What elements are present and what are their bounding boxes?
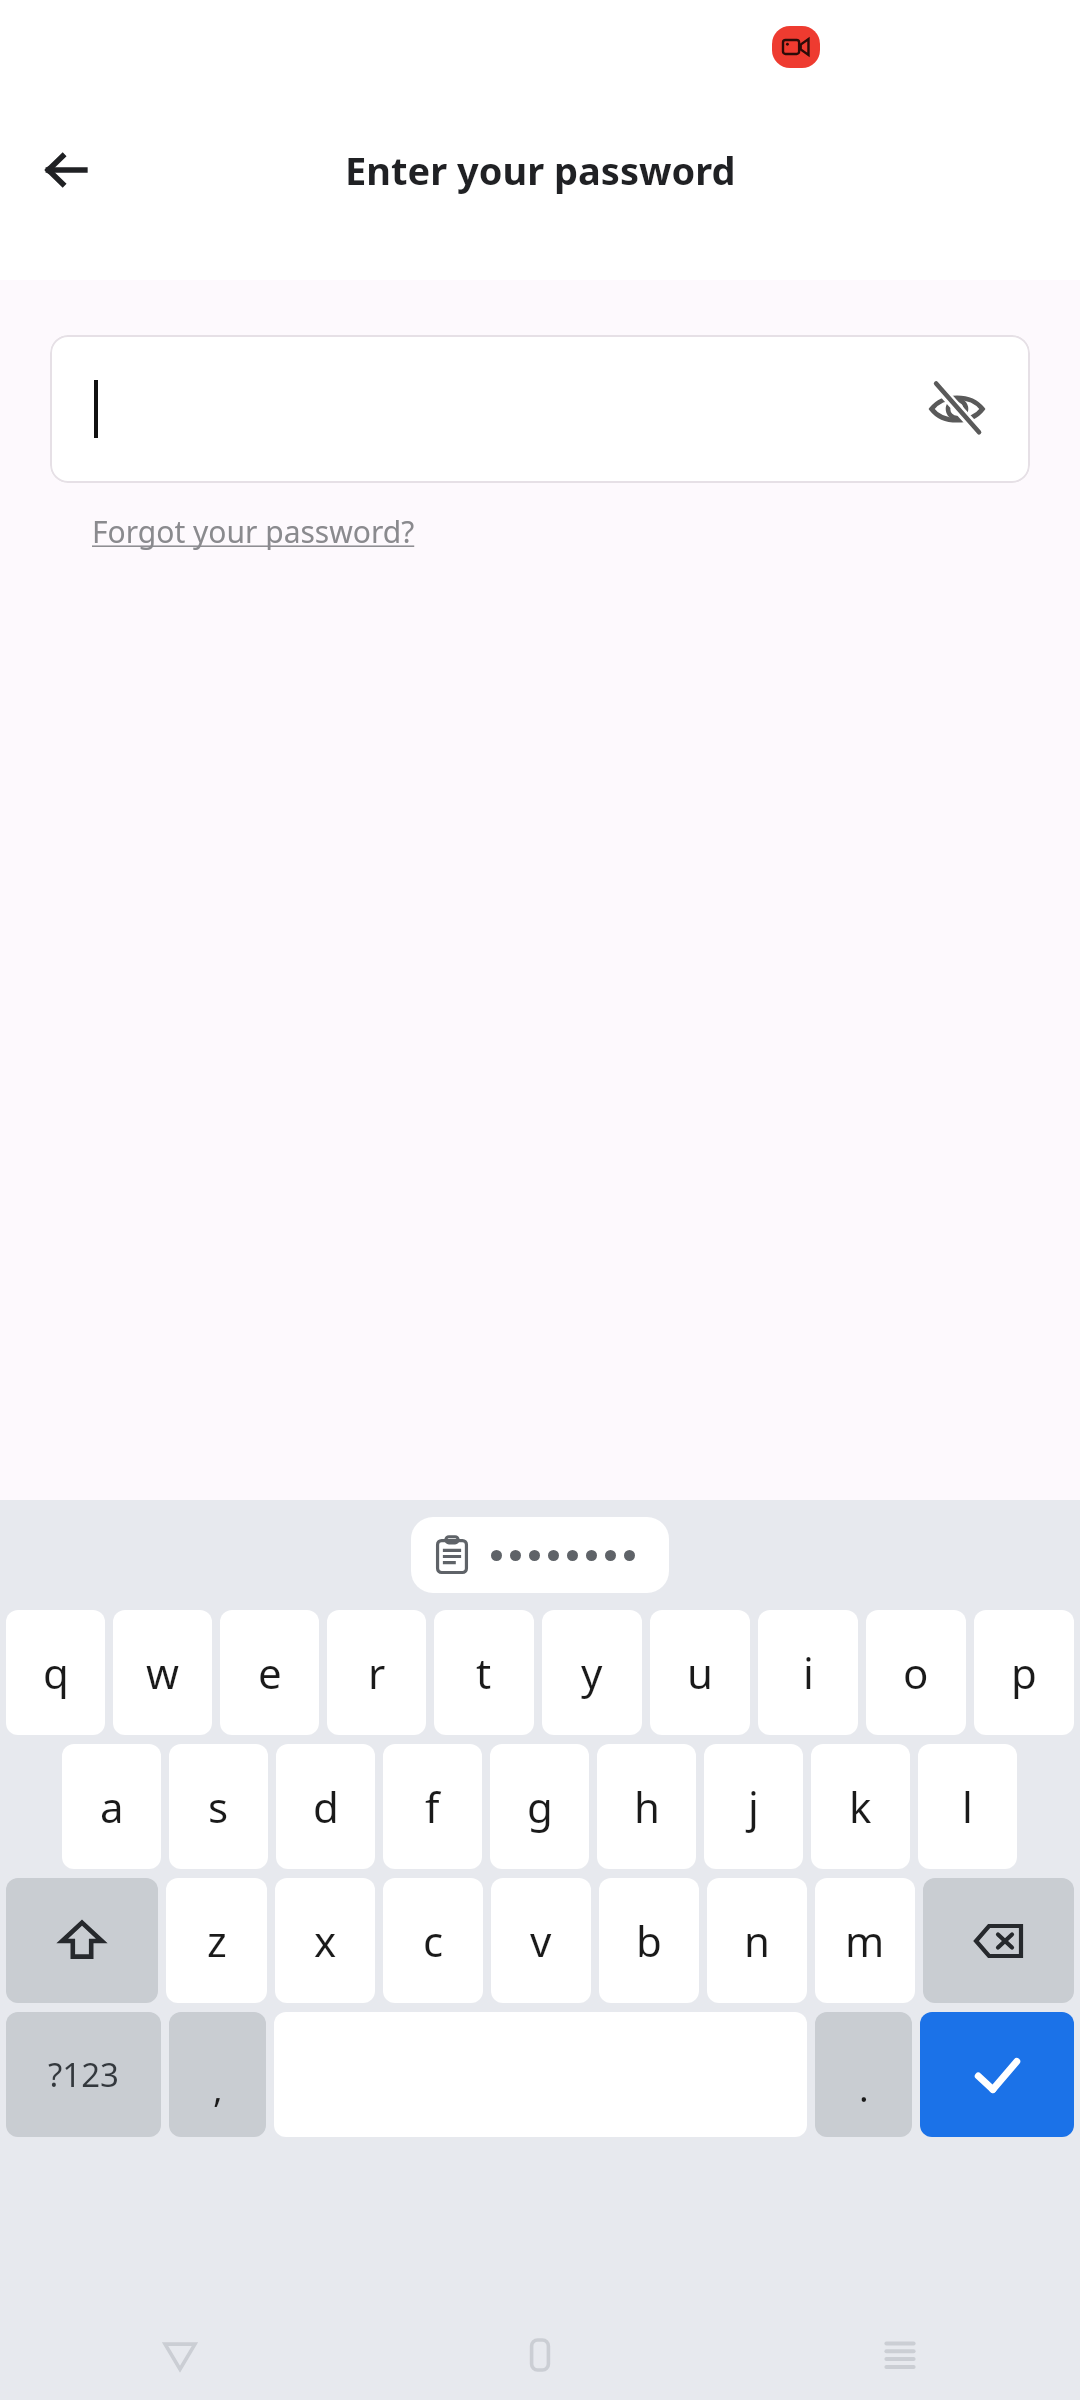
button[interactable]: , bbox=[169, 2012, 266, 2137]
button[interactable]: b bbox=[599, 1878, 699, 2003]
button[interactable]: Enter bbox=[920, 2012, 1074, 2137]
button[interactable]: s bbox=[169, 1744, 268, 1869]
button[interactable]: h bbox=[597, 1744, 696, 1869]
staticText: k bbox=[849, 1778, 872, 1835]
staticText: c bbox=[423, 1912, 444, 1969]
staticText: n bbox=[744, 1912, 770, 1969]
other: Screen recording bbox=[772, 26, 820, 68]
button[interactable]: . bbox=[815, 2012, 912, 2137]
staticText: h bbox=[634, 1778, 660, 1835]
staticText: d bbox=[313, 1778, 339, 1835]
staticText: f bbox=[425, 1778, 440, 1835]
staticText: y bbox=[581, 1644, 603, 1701]
staticText: e bbox=[258, 1644, 282, 1701]
staticText: p bbox=[1011, 1644, 1037, 1701]
staticText: . bbox=[859, 2064, 869, 2113]
staticText: , bbox=[213, 2064, 223, 2113]
staticText: b bbox=[636, 1912, 662, 1969]
button[interactable]: o bbox=[866, 1610, 966, 1735]
button[interactable]: q bbox=[6, 1610, 105, 1735]
staticText: o bbox=[903, 1644, 929, 1701]
button[interactable] bbox=[411, 1517, 669, 1593]
staticText: i bbox=[803, 1644, 814, 1701]
button[interactable]: Show password bbox=[50, 335, 1030, 483]
staticText: x bbox=[314, 1912, 337, 1969]
button[interactable]: Backspace bbox=[923, 1878, 1074, 2003]
button[interactable]: f bbox=[383, 1744, 482, 1869]
staticText: t bbox=[476, 1644, 492, 1701]
button[interactable]: n bbox=[707, 1878, 807, 2003]
staticText: l bbox=[962, 1778, 973, 1835]
button[interactable]: m bbox=[815, 1878, 915, 2003]
button[interactable]: i bbox=[758, 1610, 858, 1735]
button[interactable]: a bbox=[62, 1744, 161, 1869]
staticText: j bbox=[748, 1778, 759, 1835]
button[interactable]: v bbox=[491, 1878, 591, 2003]
staticText: a bbox=[100, 1778, 124, 1835]
button[interactable]: j bbox=[704, 1744, 803, 1869]
button[interactable]: x bbox=[275, 1878, 375, 2003]
staticText: m bbox=[845, 1912, 885, 1969]
staticText: g bbox=[527, 1778, 553, 1835]
button[interactable]: Show password bbox=[914, 366, 1000, 452]
staticText: z bbox=[207, 1912, 227, 1969]
staticText: q bbox=[43, 1644, 69, 1701]
button[interactable]: t bbox=[434, 1610, 534, 1735]
staticText: ?123 bbox=[48, 2052, 119, 2097]
button[interactable]: l bbox=[918, 1744, 1017, 1869]
button[interactable]: y bbox=[542, 1610, 642, 1735]
staticText: s bbox=[208, 1778, 229, 1835]
staticText: Forgot your password? bbox=[92, 511, 415, 552]
button[interactable]: Shift bbox=[6, 1878, 158, 2003]
button[interactable]: Back bbox=[24, 128, 108, 212]
button[interactable]: ?123 bbox=[6, 2012, 161, 2137]
button[interactable]: Recent apps bbox=[720, 2310, 1080, 2400]
staticText: v bbox=[530, 1912, 552, 1969]
button[interactable]: r bbox=[327, 1610, 426, 1735]
button[interactable]: z bbox=[166, 1878, 267, 2003]
button[interactable]: e bbox=[220, 1610, 319, 1735]
button[interactable]: c bbox=[383, 1878, 483, 2003]
button[interactable]: g bbox=[490, 1744, 589, 1869]
button[interactable]: Forgot your password? bbox=[92, 511, 415, 552]
button[interactable]: u bbox=[650, 1610, 750, 1735]
button[interactable]: w bbox=[113, 1610, 212, 1735]
staticText: w bbox=[146, 1644, 180, 1701]
staticText: r bbox=[368, 1644, 386, 1701]
button[interactable]: k bbox=[811, 1744, 910, 1869]
staticText: u bbox=[687, 1644, 713, 1701]
staticText: Enter your password bbox=[345, 144, 736, 196]
button[interactable]: p bbox=[974, 1610, 1074, 1735]
button[interactable]: d bbox=[276, 1744, 375, 1869]
